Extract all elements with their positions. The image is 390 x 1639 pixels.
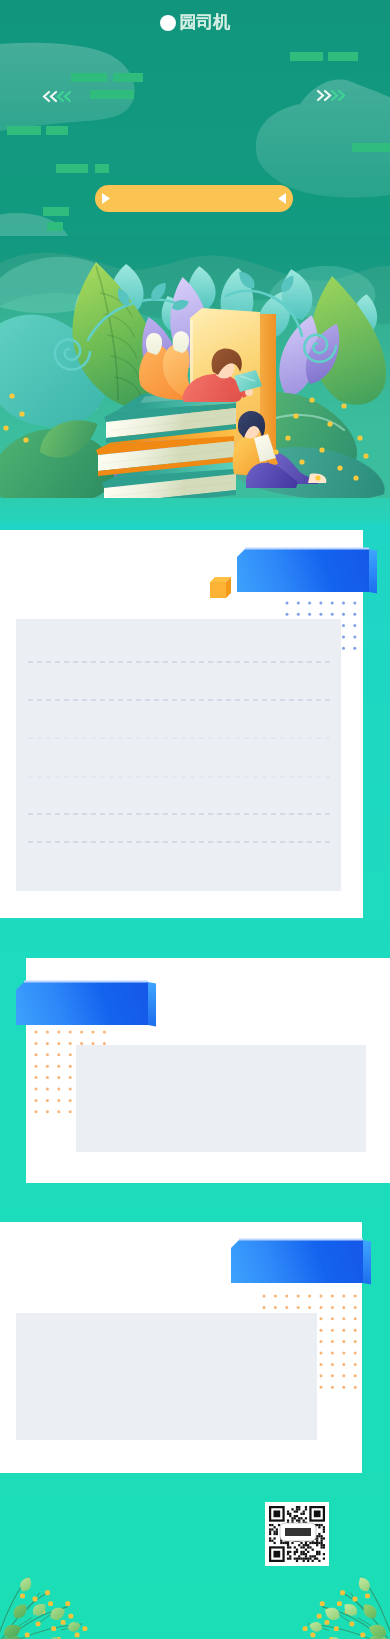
staticText: 园司机 <box>179 12 230 33</box>
button[interactable]: Logo <box>156 10 234 35</box>
